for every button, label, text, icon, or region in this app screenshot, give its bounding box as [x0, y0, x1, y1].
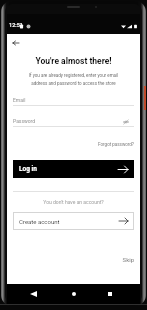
button[interactable]: Create account: [13, 212, 134, 230]
staticText: You're almost there!: [13, 56, 134, 66]
staticText: If you are already registered, enter you…: [15, 73, 132, 86]
button[interactable]: Log in: [13, 160, 134, 178]
button[interactable]: Back: [25, 285, 41, 303]
staticText: Email: [13, 97, 26, 103]
button[interactable]: Skip: [13, 256, 134, 263]
button[interactable]: Show password: [121, 117, 130, 126]
button[interactable]: Back: [9, 36, 23, 50]
button[interactable]: Forgot password?: [13, 142, 134, 147]
staticText: 12:51: [9, 22, 23, 28]
staticText: Password: [13, 118, 36, 124]
staticText: You don't have an account?: [13, 199, 134, 205]
button[interactable]: Home: [66, 285, 82, 303]
button[interactable]: Recent apps: [102, 285, 118, 303]
staticText: Log in: [19, 165, 37, 173]
staticText: Create account: [19, 218, 60, 225]
